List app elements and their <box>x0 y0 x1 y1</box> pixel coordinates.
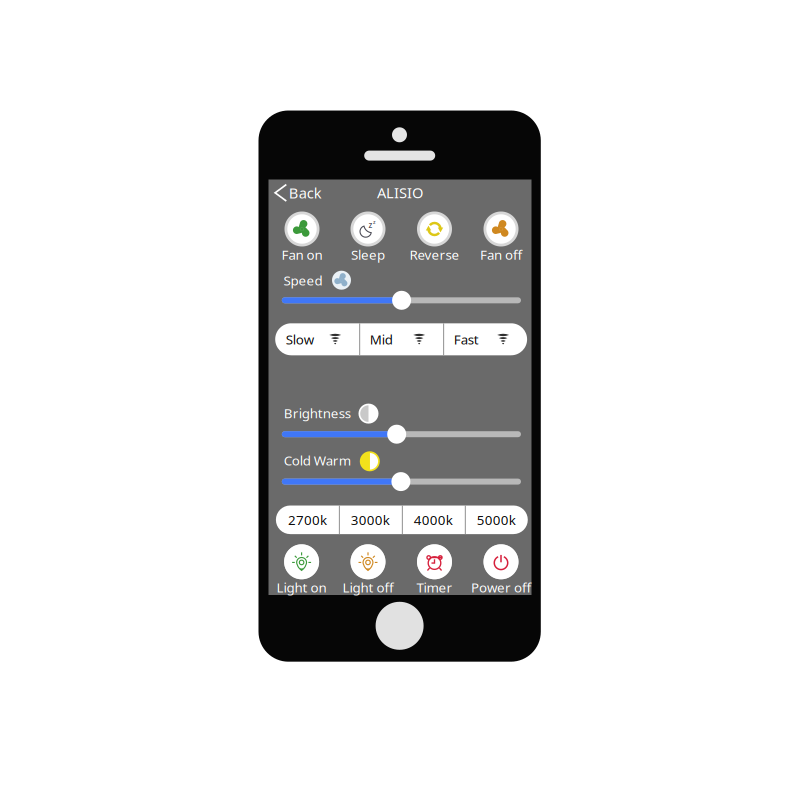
staticText: Cold Warm <box>284 451 351 469</box>
staticText: Speed <box>283 271 322 289</box>
staticText: Slow <box>286 330 314 348</box>
staticText: Timer <box>416 578 452 596</box>
button[interactable]: Light on <box>269 544 335 596</box>
staticText: Power off <box>471 578 531 596</box>
button[interactable]: Light off <box>335 544 401 596</box>
button[interactable]: z <box>336 211 400 263</box>
staticText: z <box>373 218 376 225</box>
staticText: Brightness <box>284 404 351 422</box>
button[interactable]: 3000k <box>339 505 402 534</box>
staticText: Fan off <box>480 246 522 263</box>
button[interactable]: Timer <box>401 544 467 596</box>
button[interactable]: 5000k <box>465 505 528 534</box>
staticText: 5000k <box>477 511 516 529</box>
button[interactable]: Mid <box>359 323 443 355</box>
button[interactable]: 4000k <box>402 505 465 534</box>
button[interactable]: Power off <box>468 544 534 596</box>
staticText: Fast <box>454 330 479 348</box>
staticText: 2700k <box>288 511 327 529</box>
button[interactable]: Fast <box>443 323 527 355</box>
staticText: 3000k <box>351 511 390 529</box>
staticText: ALISIO <box>377 183 423 202</box>
staticText: Light off <box>342 578 393 596</box>
staticText: Light on <box>277 578 327 596</box>
staticText: z <box>368 220 372 230</box>
button[interactable]: Back <box>268 180 326 206</box>
staticText: Fan on <box>281 246 322 263</box>
button[interactable]: Reverse <box>402 211 466 263</box>
button[interactable]: Fan on <box>270 211 334 263</box>
button[interactable]: Fan off <box>469 211 533 263</box>
staticText: 4000k <box>414 511 453 529</box>
button[interactable]: Slow <box>275 323 359 355</box>
staticText: Mid <box>370 330 393 348</box>
staticText: Sleep <box>351 246 385 263</box>
button[interactable]: 2700k <box>276 505 339 534</box>
staticText: Reverse <box>409 246 459 263</box>
staticText: Back <box>289 183 322 203</box>
